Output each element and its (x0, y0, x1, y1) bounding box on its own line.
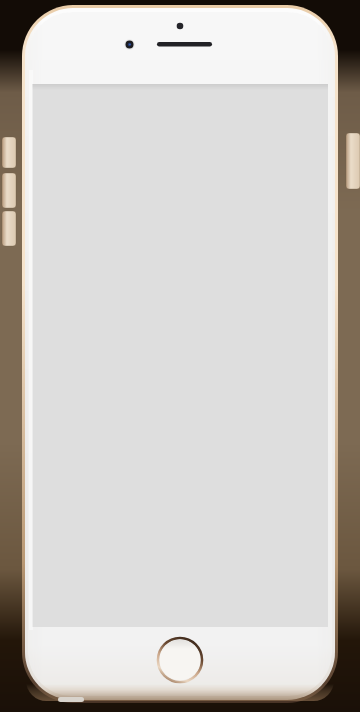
button[interactable]: Gold smartphone device mockup (0, 0, 360, 712)
